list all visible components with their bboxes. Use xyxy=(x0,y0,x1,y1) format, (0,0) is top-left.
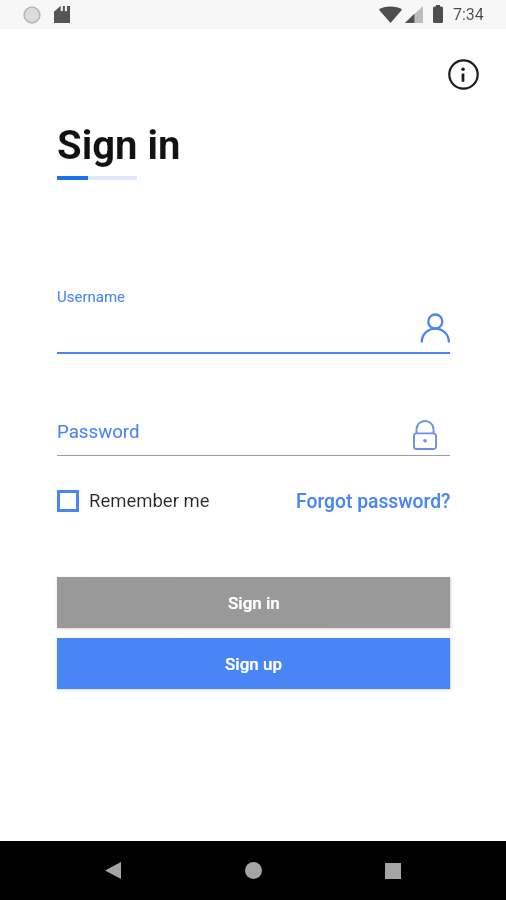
staticText: Sign up xyxy=(225,654,282,674)
staticText: Password xyxy=(57,421,140,443)
button[interactable]: Forgot password? xyxy=(296,488,451,514)
staticText: 7:34 xyxy=(453,5,484,24)
button[interactable]: Remember me xyxy=(57,489,210,513)
other: Username xyxy=(420,313,450,343)
staticText: Remember me xyxy=(89,490,210,512)
button[interactable]: Password xyxy=(57,418,450,456)
button[interactable]: Recent apps xyxy=(363,841,423,900)
staticText: Sign in xyxy=(228,593,280,613)
other: Password xyxy=(413,420,437,450)
button[interactable]: Information xyxy=(441,52,485,96)
staticText: Username xyxy=(57,288,126,306)
button[interactable]: Username xyxy=(57,286,450,354)
button[interactable]: Sign up xyxy=(57,638,450,689)
staticText: Forgot password? xyxy=(296,490,451,513)
button[interactable]: Home xyxy=(223,841,283,900)
button[interactable]: Back xyxy=(83,841,143,900)
button[interactable]: Sign in xyxy=(57,577,450,628)
staticText: Sign in xyxy=(57,122,181,169)
